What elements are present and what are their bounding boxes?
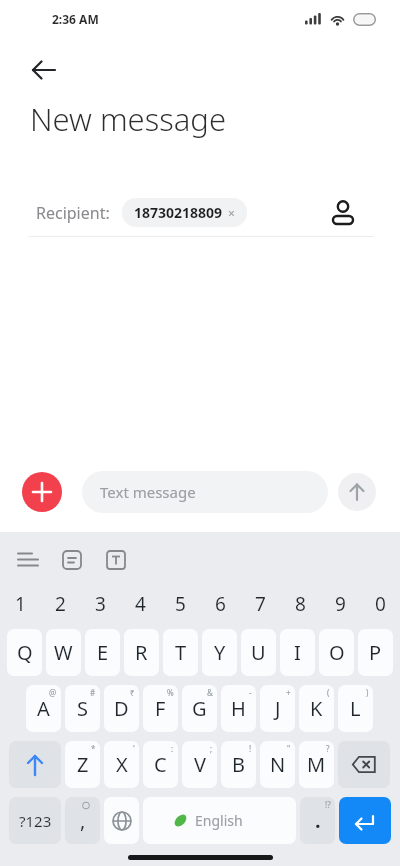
staticText: New message (30, 98, 227, 140)
staticText: I (294, 639, 301, 666)
button[interactable]: Y (202, 629, 237, 676)
button[interactable]: W (46, 629, 81, 676)
button[interactable] (9, 741, 61, 788)
button[interactable]: K (299, 685, 334, 732)
staticText: 5 (175, 591, 186, 617)
staticText: L (350, 695, 361, 722)
staticText: ? (326, 743, 330, 754)
staticText: U (251, 639, 266, 666)
staticText: + (286, 687, 291, 698)
staticText: !? (325, 799, 331, 810)
button[interactable]: Text message (82, 471, 328, 513)
button[interactable]: 4 (120, 583, 160, 624)
button[interactable]: 9 (320, 583, 360, 624)
button[interactable]: L (338, 685, 373, 732)
staticText: 18730218809 (134, 203, 223, 222)
button[interactable] (18, 550, 38, 570)
staticText: T (175, 639, 187, 666)
button[interactable]: 0 (360, 583, 400, 624)
button[interactable] (106, 550, 126, 570)
button[interactable]: G (182, 685, 217, 732)
button[interactable]: C (143, 741, 178, 788)
button[interactable] (338, 741, 390, 788)
button[interactable]: 6 (200, 583, 240, 624)
button[interactable]: 18730218809 (122, 198, 247, 227)
staticText: % (167, 687, 174, 698)
staticText: Y (214, 639, 226, 666)
button[interactable]: E (85, 629, 120, 676)
button[interactable]: ?123 (9, 797, 61, 844)
staticText: ?123 (19, 811, 52, 831)
button[interactable]: 3 (80, 583, 120, 624)
button[interactable] (339, 797, 391, 844)
button[interactable]: X (104, 741, 139, 788)
button[interactable]: , (65, 797, 100, 844)
button[interactable]: 7 (240, 583, 280, 624)
staticText: 2 (55, 591, 66, 617)
staticText: A (37, 695, 50, 722)
staticText: 9 (335, 591, 346, 617)
staticText: F (155, 695, 166, 722)
button[interactable] (104, 797, 139, 844)
staticText: @ (49, 687, 57, 698)
staticText: # (90, 687, 96, 698)
staticText: D (114, 695, 129, 722)
staticText: ) (366, 687, 369, 698)
button[interactable]: A (26, 685, 61, 732)
button[interactable]: 2 (40, 583, 80, 624)
button[interactable]: H (221, 685, 256, 732)
button[interactable]: English (143, 797, 296, 844)
button[interactable] (22, 472, 62, 512)
button[interactable]: V (182, 741, 217, 788)
staticText: N (270, 751, 286, 778)
button[interactable] (30, 56, 58, 84)
button[interactable]: O (319, 629, 354, 676)
button[interactable]: R (124, 629, 159, 676)
staticText: ₹ (130, 687, 135, 698)
staticText: * (91, 743, 96, 754)
button[interactable]: M (299, 741, 334, 788)
button[interactable]: N (260, 741, 295, 788)
staticText: 0 (375, 591, 386, 617)
staticText: E (97, 639, 109, 666)
button[interactable]: 5 (160, 583, 200, 624)
staticText: 6 (215, 591, 226, 617)
button[interactable]: 8 (280, 583, 320, 624)
button[interactable]: S (65, 685, 100, 732)
button[interactable]: P (358, 629, 393, 676)
button[interactable] (338, 473, 376, 511)
button[interactable]: Z (65, 741, 100, 788)
staticText: : (171, 743, 174, 754)
button[interactable] (330, 200, 356, 226)
button[interactable]: U (241, 629, 276, 676)
staticText: . (315, 807, 321, 834)
staticText: 3 (95, 591, 106, 617)
button[interactable]: Q (7, 629, 42, 676)
staticText: Text message (100, 482, 196, 502)
staticText: 8 (295, 591, 306, 617)
staticText: - (249, 687, 252, 698)
button[interactable]: J (260, 685, 295, 732)
staticText: V (194, 751, 206, 778)
button[interactable]: F (143, 685, 178, 732)
staticText: G (192, 695, 207, 722)
staticText: 1 (15, 591, 26, 617)
button[interactable]: T (163, 629, 198, 676)
staticText: W (54, 639, 73, 666)
staticText: M (307, 751, 326, 778)
button[interactable]: . (300, 797, 335, 844)
staticText: English (195, 811, 243, 830)
staticText: × (228, 205, 235, 221)
button[interactable]: B (221, 741, 256, 788)
staticText: , (80, 807, 86, 834)
staticText: X (116, 751, 128, 778)
staticText: Recipient: (36, 202, 110, 224)
button[interactable]: 1 (0, 583, 40, 624)
staticText: ! (249, 743, 252, 754)
staticText: J (275, 695, 281, 722)
button[interactable] (62, 550, 82, 570)
staticText: Z (77, 751, 89, 778)
staticText: " (287, 743, 291, 754)
button[interactable]: D (104, 685, 139, 732)
button[interactable]: I (280, 629, 315, 676)
